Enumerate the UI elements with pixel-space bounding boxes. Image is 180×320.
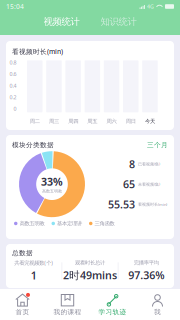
staticText: 首页 [15,308,29,316]
staticText: 完播率平均 [134,259,159,266]
staticText: 高数五明教 [19,220,44,227]
staticText: 0 [13,105,16,112]
staticText: 观看时长总计 [75,259,105,266]
staticText: 看视频时长(min) [138,202,167,207]
staticText: 高数五明教 [42,189,62,194]
staticText: 基本定理讲 [57,220,82,227]
staticText: 33% [41,175,63,189]
staticText: 周五 [87,118,97,124]
staticText: 0.8 [9,59,16,66]
staticText: 三角函数 [94,220,114,227]
staticText: 共看完视频数(个) [14,259,53,266]
staticText: 55.53 [108,197,135,211]
staticText: 我的课程 [53,308,81,316]
button[interactable]: 我 [135,289,180,320]
staticText: 97.36% [128,268,164,282]
staticText: 15:04 [6,2,24,11]
staticText: 周二 [30,118,40,124]
staticText: 总数据 [12,249,33,257]
staticText: 0.2 [9,94,16,101]
button[interactable]: 学习轨迹 [90,289,135,320]
staticText: 周三 [49,118,59,124]
staticText: 8 [129,157,135,171]
staticText: 已看视频(集) [138,161,160,167]
staticText: 未看视频(集) [138,181,160,187]
staticText: 知识统计 [100,16,136,27]
button[interactable]: 视频统计 [41,15,81,28]
staticText: 视频统计 [43,16,79,27]
staticText: 周日 [126,118,136,124]
staticText: 今天 [145,118,155,124]
staticText: 周六 [106,118,116,124]
staticText: 周四 [68,118,78,124]
staticText: 三个月 [147,141,168,149]
button[interactable]: 我的课程 [45,289,90,320]
button[interactable]: 三个月 [147,141,168,149]
staticText: 2时49mins [63,268,117,282]
staticText: 我 [154,308,161,316]
staticText: 1 [31,268,37,282]
staticText: 4G [147,3,154,10]
staticText: 65 [123,177,135,191]
staticText: 模块分类数据 [12,141,54,149]
staticText: 0.4 [9,82,16,89]
staticText: 看视频时长(min) [12,47,63,56]
button[interactable]: 首页 [0,289,45,320]
staticText: 学习轨迹 [98,308,126,316]
staticText: 0.6 [9,70,16,78]
button[interactable]: 知识统计 [98,15,138,28]
